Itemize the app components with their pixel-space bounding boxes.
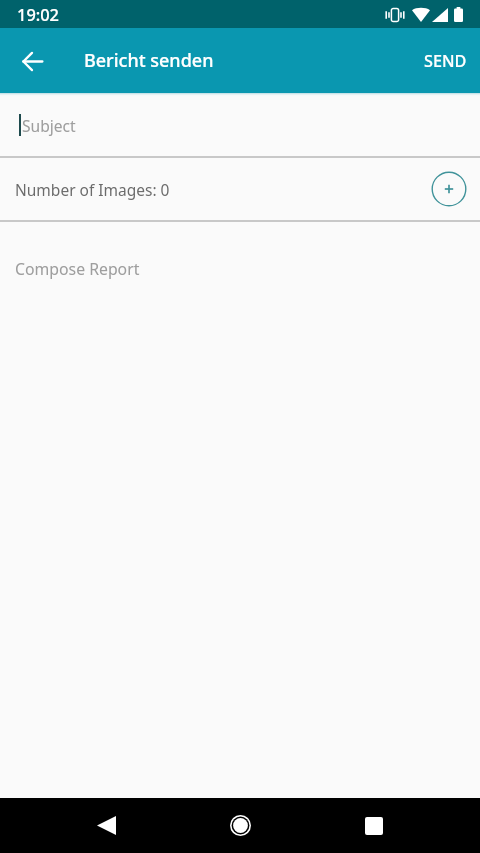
button[interactable]: Recent apps xyxy=(346,798,402,853)
staticText: SEND xyxy=(424,50,467,72)
staticText: Compose Report xyxy=(15,258,140,280)
button[interactable]: Back xyxy=(8,37,56,85)
button[interactable]: Subject xyxy=(0,97,480,156)
button[interactable]: SEND xyxy=(409,36,480,86)
staticText: 19:02 xyxy=(17,3,59,25)
staticText: Subject xyxy=(22,115,76,136)
staticText: Number of Images: 0 xyxy=(15,179,170,200)
button[interactable]: Compose Report xyxy=(0,222,480,798)
button[interactable]: Home xyxy=(212,798,268,853)
staticText: Bericht senden xyxy=(84,48,214,73)
button[interactable]: Add image xyxy=(429,169,469,209)
button[interactable]: Back xyxy=(78,798,134,853)
button[interactable]: Number of Images: 0 xyxy=(0,158,480,220)
